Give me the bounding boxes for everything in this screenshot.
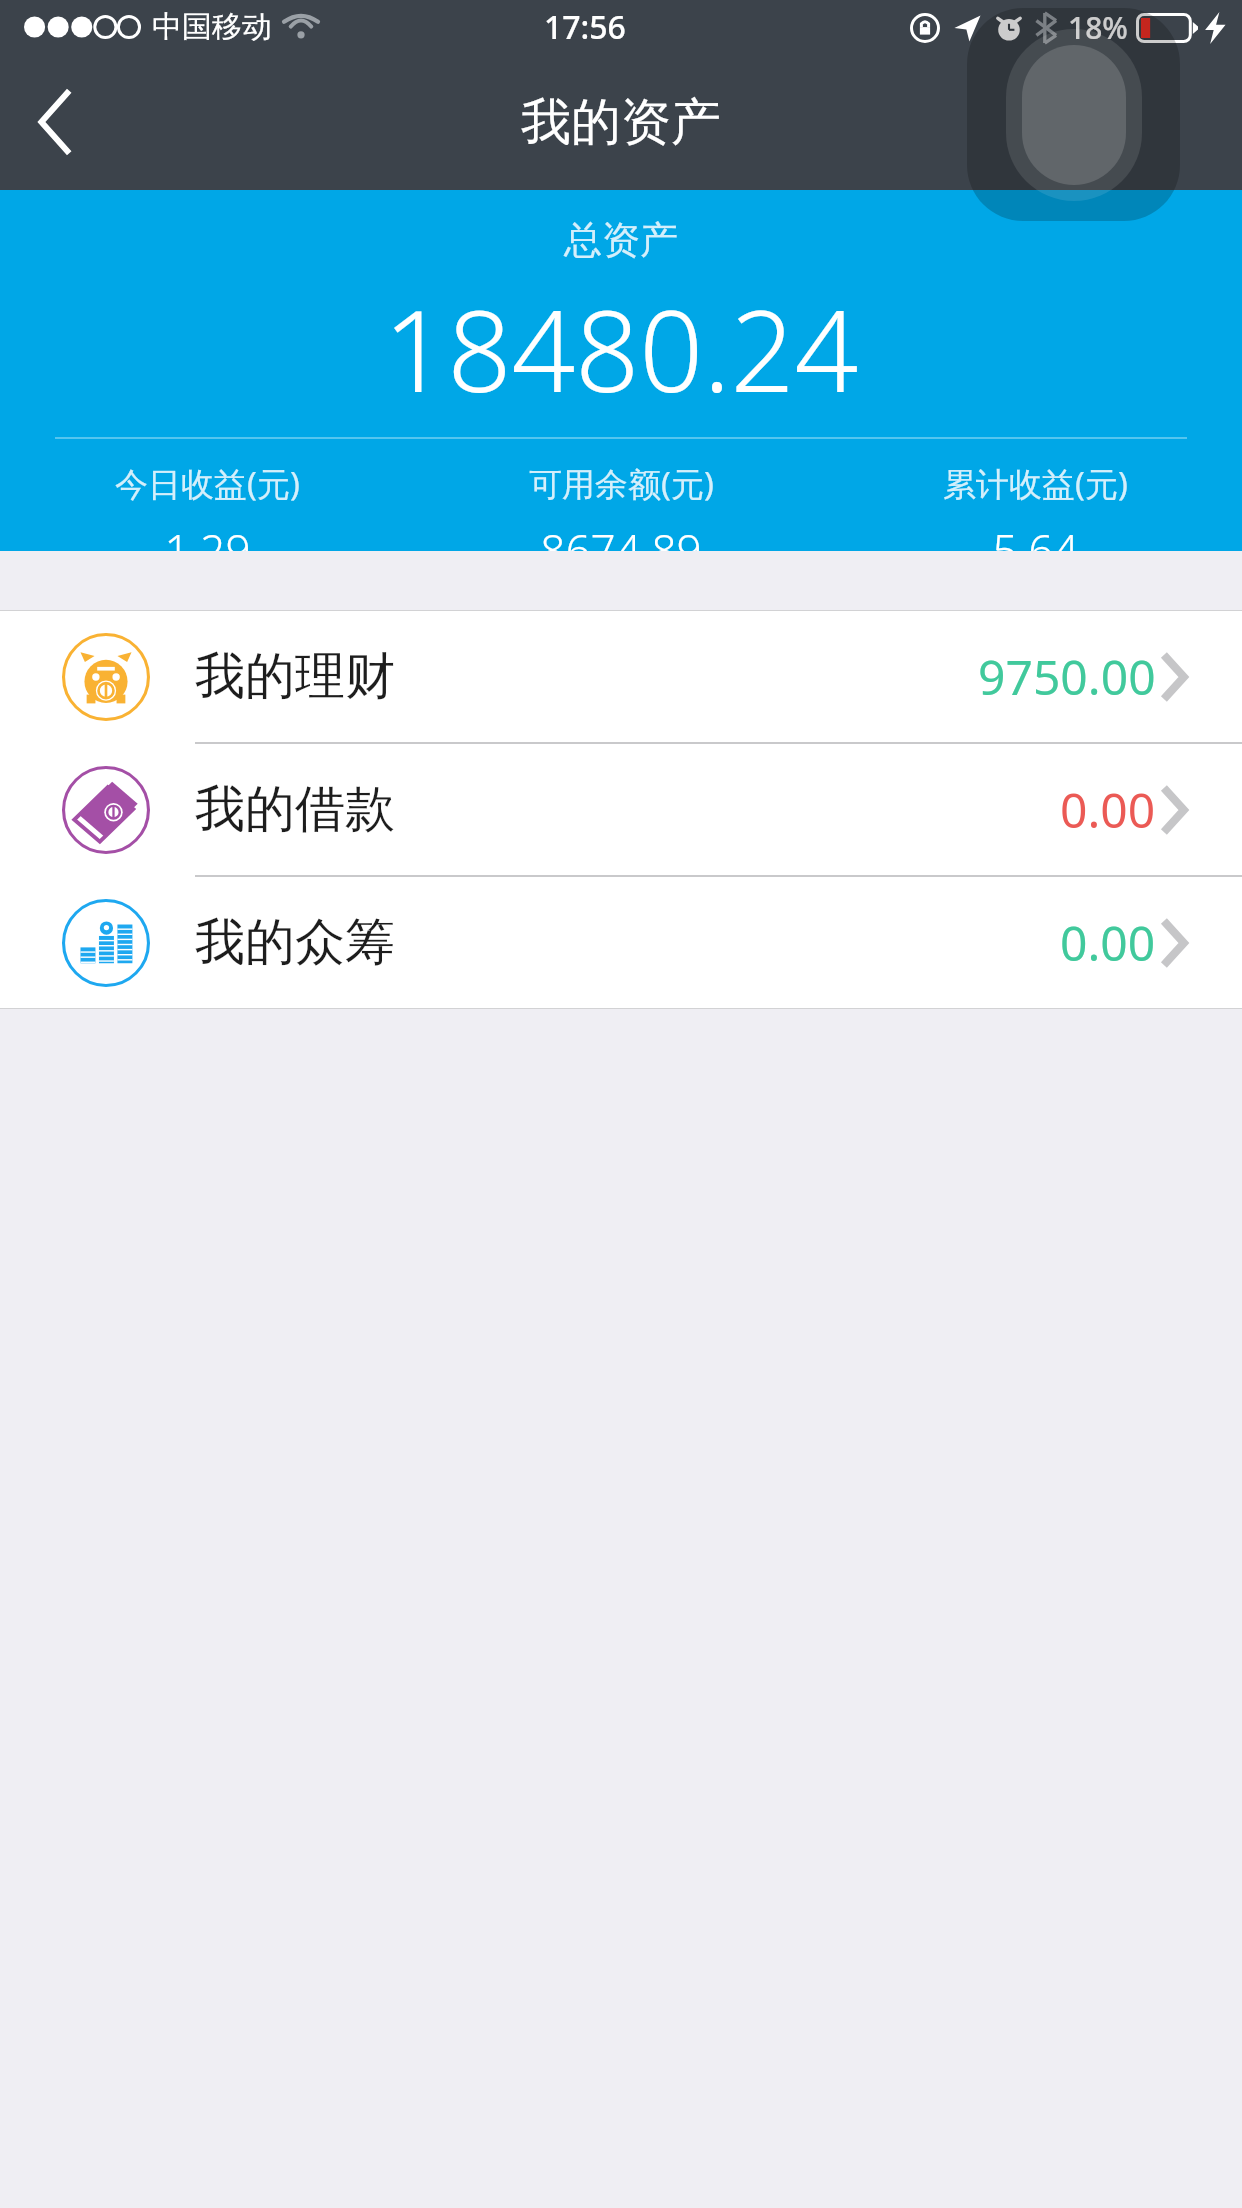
staticText: 0.00 <box>1060 910 1156 975</box>
staticText: 18% <box>1068 7 1128 48</box>
staticText: 17:56 <box>544 5 626 49</box>
staticText: 今日收益(元) <box>115 461 300 506</box>
staticText: 1.29 <box>164 520 251 551</box>
button[interactable]: 我的理财 <box>0 611 1242 742</box>
staticText: 中国移动 <box>152 8 272 46</box>
staticText: 我的众筹 <box>195 911 395 974</box>
staticText: 18480.24 <box>0 272 1242 425</box>
staticText: 5.64 <box>992 520 1079 551</box>
staticText: 我的理财 <box>195 645 395 708</box>
staticText: 我的资产 <box>521 91 721 154</box>
button[interactable]: 我的众筹 <box>0 877 1242 1008</box>
staticText: 8674.89 <box>540 520 702 551</box>
staticText: 累计收益(元) <box>943 461 1128 506</box>
staticText: 0.00 <box>1060 777 1156 842</box>
button[interactable]: Back <box>0 67 110 177</box>
staticText: 我的借款 <box>195 778 395 841</box>
staticText: 总资产 <box>0 216 1242 264</box>
staticText: 可用余额(元) <box>529 461 714 506</box>
button[interactable]: Assistive touch <box>967 8 1180 221</box>
staticText: 9750.00 <box>978 644 1156 709</box>
button[interactable]: 我的借款 <box>0 744 1242 875</box>
